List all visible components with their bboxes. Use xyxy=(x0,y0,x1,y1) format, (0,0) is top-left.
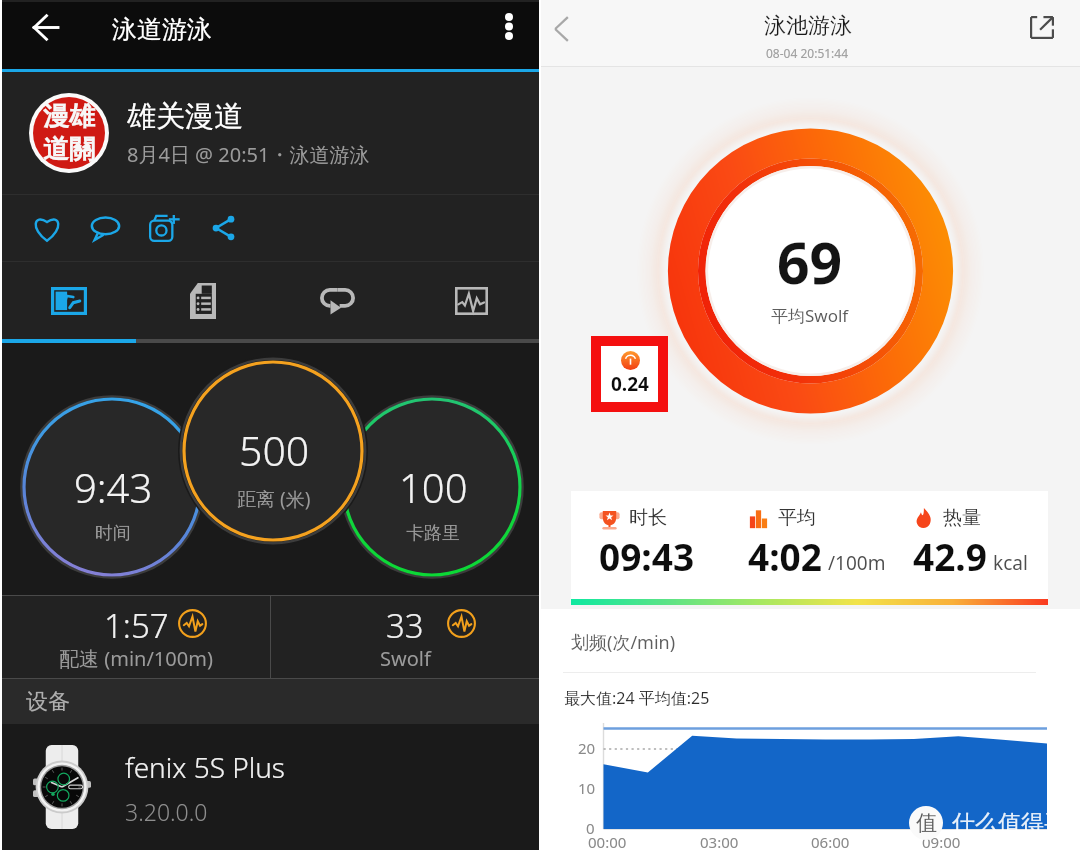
staticText: 4:02 xyxy=(748,531,822,581)
staticText: 09:43 xyxy=(599,531,695,581)
button[interactable]: Comment xyxy=(76,199,135,257)
button[interactable]: Laps xyxy=(270,262,404,339)
staticText: 平均Swolf xyxy=(771,304,849,327)
staticText: 03:00 xyxy=(700,832,739,850)
button[interactable]: Back xyxy=(15,0,75,57)
staticText: 1:57 xyxy=(104,603,169,648)
staticText: 8月4日 @ 20:51・泳道游泳 xyxy=(127,141,370,168)
button[interactable]: Share xyxy=(1013,0,1071,56)
staticText: 时长 xyxy=(629,506,667,530)
button[interactable]: 热量 xyxy=(889,491,1048,599)
staticText: 69 xyxy=(777,223,843,301)
staticText: 卡路里 xyxy=(406,522,460,545)
staticText: 06:00 xyxy=(811,832,850,850)
button[interactable]: 漫 xyxy=(2,72,539,194)
staticText: 雄 xyxy=(69,100,95,133)
staticText: 配速 (min/100m) xyxy=(59,645,213,672)
staticText: 0.24 xyxy=(611,371,649,397)
staticText: 00:00 xyxy=(588,832,627,850)
staticText: 设备 xyxy=(26,688,70,716)
staticText: 热量 xyxy=(943,506,981,530)
staticText: 雄关漫道 xyxy=(127,98,243,135)
staticText: 距离 (米) xyxy=(237,486,311,512)
button[interactable]: Charts xyxy=(404,262,538,339)
button[interactable]: Map xyxy=(2,262,136,339)
staticText: 漫 xyxy=(43,100,69,133)
staticText: 42.9 xyxy=(913,531,987,581)
staticText: fenix 5S Plus xyxy=(125,748,285,786)
staticText: 0 xyxy=(586,818,595,838)
button[interactable]: fenix 5S Plus xyxy=(2,724,539,850)
staticText: 泳道游泳 xyxy=(112,14,212,45)
staticText: 值 xyxy=(916,810,937,836)
staticText: /100m xyxy=(828,550,886,576)
button[interactable]: Share xyxy=(194,199,253,257)
staticText: 100 xyxy=(399,460,468,514)
staticText: 10 xyxy=(578,778,596,798)
staticText: 平均 xyxy=(778,506,816,530)
staticText: 09:00 xyxy=(922,832,961,850)
button[interactable]: Back xyxy=(533,1,589,57)
staticText: 时间 xyxy=(95,522,131,545)
button[interactable]: 时长 xyxy=(571,491,730,599)
button[interactable]: Add photo xyxy=(135,199,194,257)
staticText: 9:43 xyxy=(74,460,153,514)
staticText: 20 xyxy=(578,738,596,758)
staticText: 划频(次/min) xyxy=(571,630,676,655)
staticText: 500 xyxy=(239,422,310,478)
staticText: 08-04 20:51:44 xyxy=(766,45,849,61)
button[interactable]: 33 xyxy=(271,596,539,678)
button[interactable]: Like xyxy=(17,199,76,257)
button[interactable]: 1:57 xyxy=(2,596,270,678)
staticText: Swolf xyxy=(380,645,431,672)
button[interactable]: 平均 xyxy=(730,491,889,599)
staticText: kcal xyxy=(993,550,1028,576)
staticText: 道 xyxy=(43,133,69,166)
staticText: 33 xyxy=(386,603,424,648)
staticText: 關 xyxy=(69,133,95,166)
staticText: 3.20.0.0 xyxy=(125,796,208,827)
staticText: 最大值:24 平均值:25 xyxy=(564,687,710,709)
button[interactable]: More options xyxy=(481,0,537,54)
staticText: 什么值得买 xyxy=(952,809,1067,838)
staticText: 泳池游泳 xyxy=(764,12,852,40)
button[interactable]: Details xyxy=(136,262,270,339)
